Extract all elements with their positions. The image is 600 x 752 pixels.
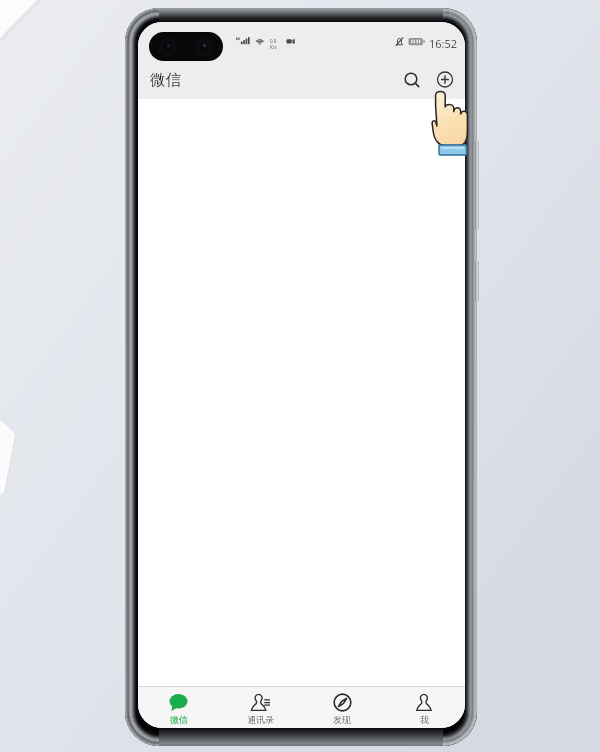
staticText: 0.9 bbox=[270, 38, 277, 44]
staticText: 16:52 bbox=[429, 36, 458, 51]
button[interactable]: 我 bbox=[383, 687, 465, 728]
button[interactable]: 通讯录 bbox=[219, 687, 301, 728]
button[interactable]: 发现 bbox=[301, 687, 383, 728]
staticText: 发现 bbox=[333, 714, 351, 725]
staticText: 我 bbox=[420, 714, 429, 725]
staticText: K/s bbox=[270, 44, 277, 50]
button[interactable]: Search bbox=[397, 65, 425, 93]
staticText: 通讯录 bbox=[247, 714, 274, 725]
staticText: 微信 bbox=[150, 70, 181, 90]
staticText: 微信 bbox=[170, 714, 188, 725]
button[interactable]: Add bbox=[431, 65, 459, 93]
button[interactable]: 微信 bbox=[138, 687, 219, 728]
